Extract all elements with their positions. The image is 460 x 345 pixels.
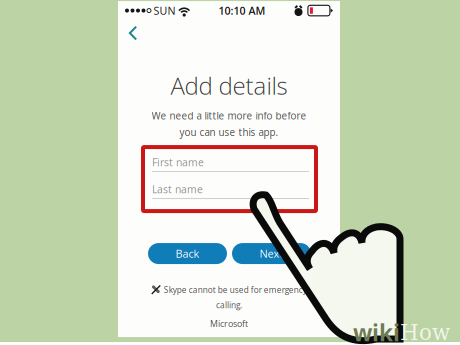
staticText: you can use this app. — [179, 125, 278, 139]
staticText: First name — [152, 155, 204, 169]
staticText: Next — [259, 246, 283, 261]
staticText: We need a little more info before — [151, 109, 306, 122]
staticText: calling. — [216, 299, 242, 311]
button[interactable]: First name — [152, 153, 309, 172]
staticText: Microsoft — [210, 318, 248, 330]
staticText: Last name — [152, 182, 203, 196]
staticText: How — [400, 320, 450, 345]
staticText: Back — [175, 246, 199, 261]
button[interactable]: Back — [123, 23, 143, 43]
staticText: SUN — [153, 3, 175, 18]
button[interactable]: Last name — [152, 180, 309, 199]
staticText: Add details — [170, 69, 287, 102]
staticText: 10:10 AM — [218, 3, 265, 18]
staticText: Skype cannot be used for emergency — [164, 284, 307, 295]
button[interactable]: Next — [232, 243, 311, 264]
button[interactable]: Back — [148, 243, 227, 264]
staticText: wiki — [353, 317, 400, 345]
